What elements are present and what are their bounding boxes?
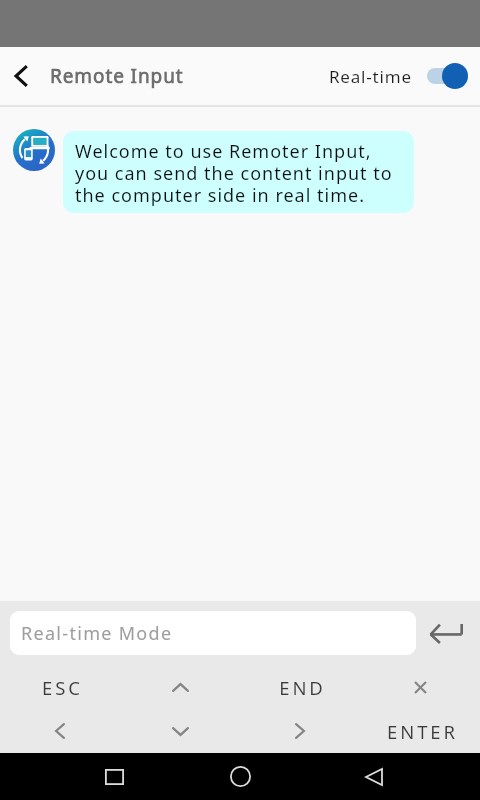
staticText: Welcome to use Remoter Input, you can se…: [75, 139, 393, 207]
staticText: Real-time: [329, 65, 412, 88]
staticText: Remote Input: [50, 63, 184, 89]
staticText: ESC: [42, 675, 83, 700]
button[interactable]: Send: [424, 611, 468, 655]
button[interactable]: Home: [217, 753, 264, 800]
button[interactable]: Real-time Mode: [10, 611, 416, 655]
staticText: ENTER: [387, 719, 458, 744]
button[interactable]: Delete: [360, 665, 480, 709]
button[interactable]: Left: [0, 709, 120, 753]
button[interactable]: Right: [240, 709, 360, 753]
button[interactable]: Up: [120, 665, 240, 709]
staticText: END: [279, 675, 326, 700]
button[interactable]: ESC: [0, 665, 120, 709]
button[interactable]: END: [240, 665, 360, 709]
button[interactable]: Back: [0, 54, 44, 98]
button[interactable]: ENTER: [360, 709, 480, 753]
button[interactable]: Real-time toggle: [427, 62, 468, 90]
button[interactable]: Down: [120, 709, 240, 753]
button[interactable]: Back: [350, 753, 397, 800]
button[interactable]: Recent apps: [91, 753, 138, 800]
staticText: Real-time Mode: [21, 621, 173, 646]
